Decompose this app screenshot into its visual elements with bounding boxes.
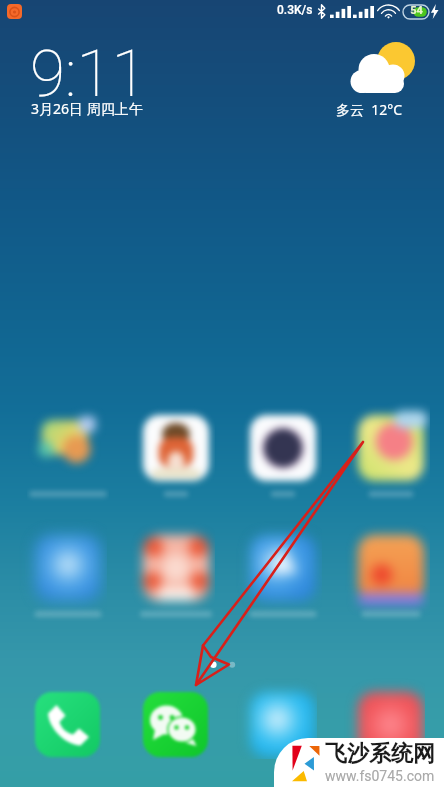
button[interactable]: Phone (25, 682, 110, 767)
button[interactable]: App (23, 403, 113, 515)
staticText: 飞沙系统网 (325, 740, 435, 768)
button[interactable]: App (131, 523, 221, 635)
staticText: 0.3K/s (277, 3, 313, 17)
button[interactable]: App (238, 523, 328, 635)
button[interactable]: App (346, 403, 436, 515)
staticText: 9:11 (30, 37, 147, 112)
button[interactable]: WeChat (133, 682, 218, 767)
staticText: 多云 12°C (336, 100, 403, 119)
staticText: 54 (410, 4, 423, 17)
button[interactable]: App (238, 403, 328, 515)
button[interactable]: App (23, 523, 113, 635)
button[interactable]: App (131, 403, 221, 515)
staticText: 3月26日 周四上午 (31, 99, 143, 118)
button[interactable]: App (348, 682, 433, 767)
staticText: www.fs0745.com (325, 768, 435, 784)
button[interactable]: App (346, 523, 436, 635)
button[interactable]: App (240, 682, 325, 767)
